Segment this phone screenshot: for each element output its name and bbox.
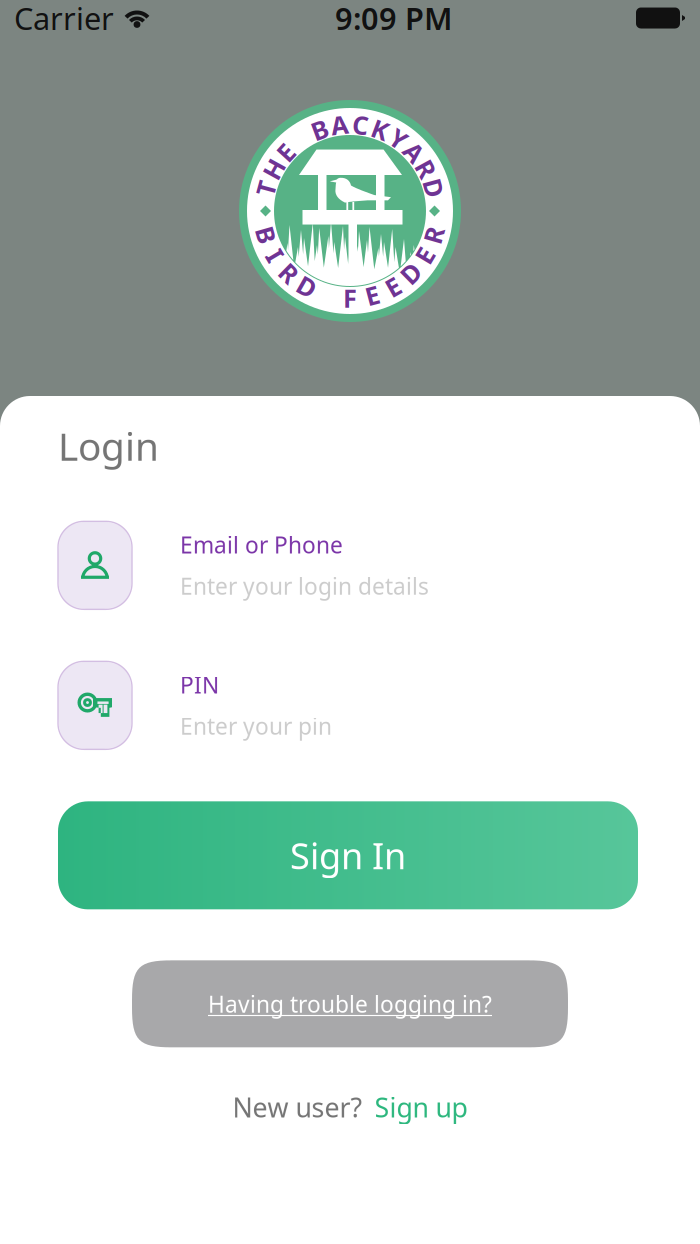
staticText: D: [401, 256, 420, 290]
staticText: Enter your login details: [180, 571, 429, 601]
staticText: E: [418, 239, 432, 272]
staticText: C: [352, 108, 368, 141]
button[interactable]: Sign In: [58, 801, 638, 909]
staticText: R: [281, 256, 298, 290]
button[interactable]: Email or Phone: [58, 521, 642, 609]
staticText: E: [365, 278, 379, 312]
staticText: Having trouble logging in?: [208, 989, 492, 1019]
staticText: E: [386, 270, 400, 303]
staticText: H: [264, 152, 283, 186]
staticText: New user?: [232, 1089, 362, 1125]
staticText: Carrier: [14, 0, 114, 38]
staticText: I: [270, 239, 280, 272]
staticText: B: [311, 113, 328, 146]
staticText: Email or Phone: [180, 530, 343, 560]
staticText: Sign In: [290, 831, 406, 879]
staticText: [324, 278, 331, 312]
staticText: R: [418, 152, 435, 186]
button[interactable]: PIN: [58, 661, 642, 749]
staticText: [298, 122, 305, 156]
staticText: E: [279, 135, 293, 169]
staticText: Login: [58, 420, 159, 471]
staticText: K: [372, 113, 389, 146]
staticText: Sign up: [374, 1089, 467, 1125]
button[interactable]: Having trouble logging in?: [132, 960, 568, 1047]
staticText: 9:09 PM: [335, 0, 452, 38]
staticText: D: [297, 270, 316, 303]
staticText: PIN: [180, 670, 219, 700]
staticText: B: [258, 218, 275, 252]
staticText: F: [343, 281, 357, 315]
staticText: R: [425, 218, 442, 252]
staticText: A: [331, 108, 349, 141]
staticText: Enter your pin: [180, 711, 332, 741]
staticText: D: [424, 171, 443, 205]
staticText: Y: [391, 122, 407, 156]
staticText: T: [258, 171, 273, 205]
button[interactable]: Sign up: [374, 1089, 467, 1125]
staticText: A: [405, 135, 423, 169]
